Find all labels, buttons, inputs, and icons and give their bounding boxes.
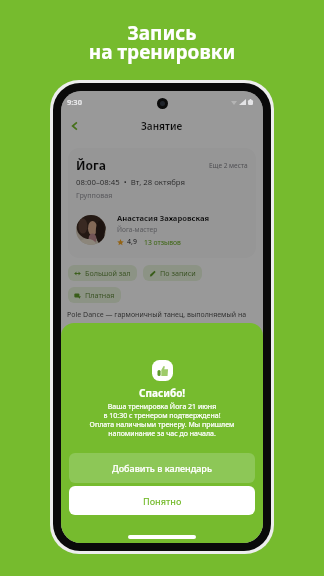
staticText: Pole Dance — гармоничный танец, выполняе… — [67, 310, 247, 320]
staticText: Еще 2 места — [209, 161, 248, 170]
staticText: По записи — [160, 268, 196, 278]
staticText: Запись — [0, 20, 324, 46]
staticText: Большой зал — [85, 268, 131, 278]
button[interactable]: Добавить в календарь — [69, 453, 255, 483]
button[interactable]: 13 отзывов — [144, 238, 181, 247]
staticText: на тренировки — [0, 39, 324, 65]
staticText: 9:30 — [67, 97, 82, 107]
staticText: Йога — [76, 157, 106, 173]
staticText: 08:00–08:45 • Вт, 28 октября — [76, 177, 185, 188]
staticText: Понятно — [143, 495, 182, 507]
staticText: Анастасия Захаровская — [117, 213, 210, 223]
button[interactable]: Понятно — [69, 486, 255, 515]
staticText: Добавить в календарь — [112, 462, 212, 474]
staticText: Ваша тренировка Йога 21 июня в 10:30 с т… — [61, 402, 263, 438]
staticText: Платная — [85, 290, 115, 300]
button[interactable]: Назад — [67, 118, 83, 134]
staticText: Йога-мастер — [117, 225, 158, 234]
button[interactable]: Платная — [68, 287, 121, 303]
staticText: Групповая — [76, 190, 113, 200]
button[interactable]: Большой зал — [68, 265, 137, 281]
staticText: 4,9 — [127, 237, 137, 247]
staticText: Занятие — [141, 119, 183, 133]
button[interactable]: По записи — [143, 265, 202, 281]
staticText: Спасибо! — [139, 386, 186, 400]
